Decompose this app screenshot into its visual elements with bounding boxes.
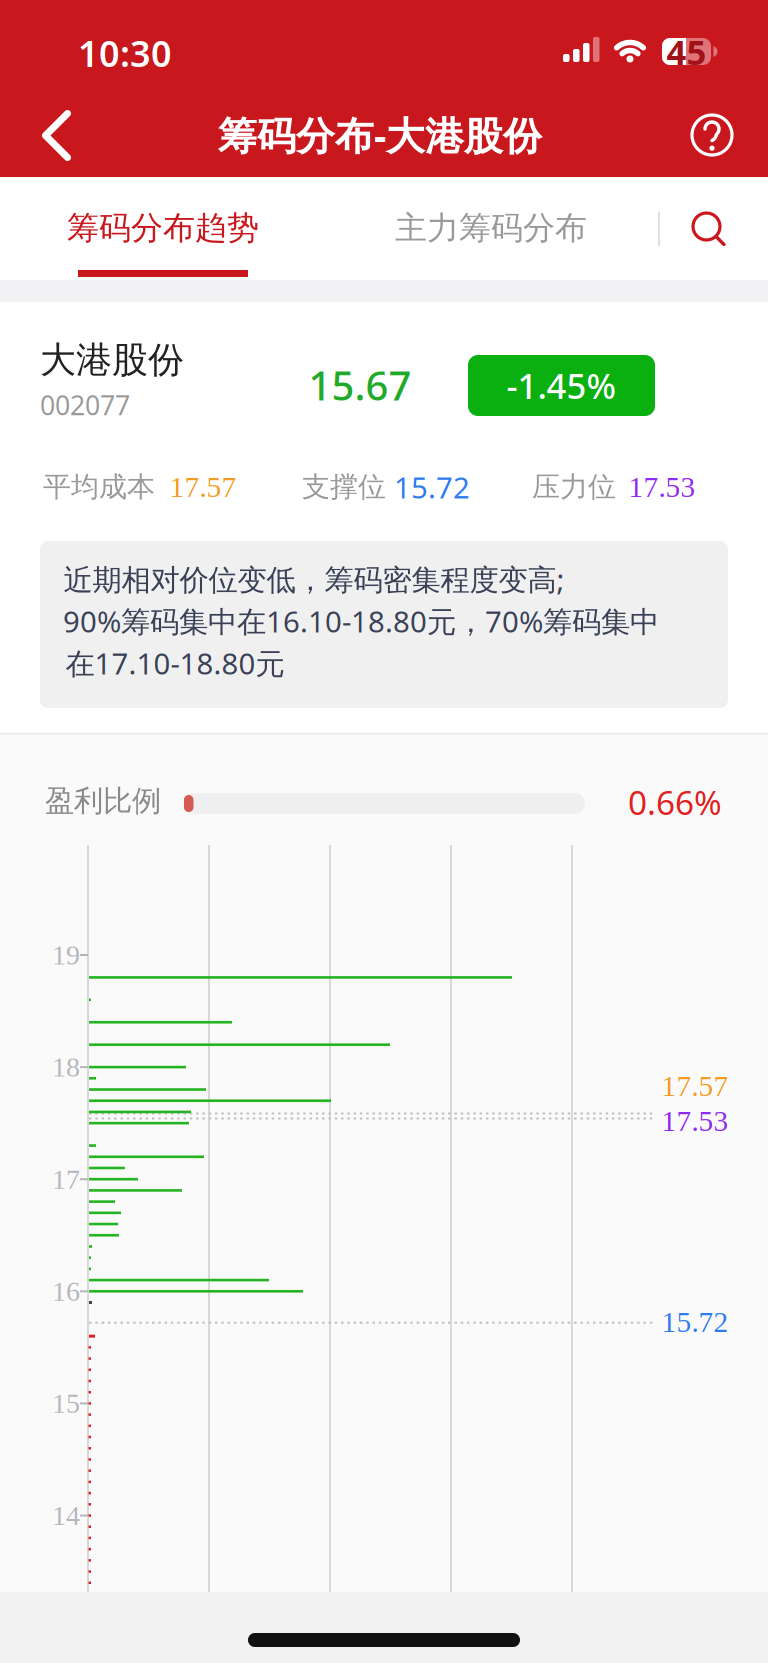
staticText: 10:30: [78, 29, 172, 77]
staticText: 主力筹码分布: [395, 208, 587, 248]
staticText: 筹码分布-大港股份: [218, 109, 542, 161]
staticText: 支撑位: [302, 470, 386, 504]
staticText: 18: [52, 1052, 80, 1083]
staticText: 002077: [40, 387, 130, 423]
staticText: 16: [52, 1276, 80, 1307]
staticText: 17.57: [169, 471, 236, 503]
staticText: 19: [52, 939, 80, 970]
staticText: 15.67: [308, 358, 411, 411]
staticText: 大港股份: [40, 338, 184, 382]
staticText: 15.72: [394, 467, 470, 506]
button[interactable]: 筹码分布趋势: [33, 183, 293, 273]
staticText: 0.66%: [628, 780, 722, 824]
button[interactable]: [679, 200, 735, 256]
staticText: 90%筹码集中在16.10-18.80元，70%筹码集中: [63, 601, 659, 640]
staticText: 17.57: [661, 1070, 728, 1102]
button[interactable]: 主力筹码分布: [361, 183, 621, 273]
staticText: 45: [666, 28, 706, 74]
staticText: 17.53: [661, 1105, 728, 1137]
staticText: 压力位: [532, 470, 616, 504]
staticText: 筹码分布趋势: [67, 208, 259, 248]
staticText: 17: [52, 1164, 80, 1195]
staticText: 14: [52, 1500, 80, 1531]
staticText: 盈利比例: [45, 783, 161, 819]
staticText: 17.53: [628, 471, 695, 503]
staticText: 15: [52, 1388, 80, 1419]
staticText: 15.72: [661, 1306, 728, 1338]
button[interactable]: [684, 107, 740, 163]
staticText: -1.45%: [506, 362, 616, 408]
staticText: 在17.10-18.80元: [65, 643, 284, 682]
button[interactable]: [34, 107, 78, 163]
staticText: 平均成本: [43, 470, 155, 504]
staticText: 近期相对价位变低，筹码密集程度变高;: [63, 559, 564, 598]
